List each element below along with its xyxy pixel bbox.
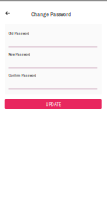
- staticText: Old Password: [8, 31, 29, 36]
- staticText: Confirm Password: [8, 73, 36, 78]
- staticText: New Password: [8, 52, 30, 57]
- button[interactable]: Back: [2, 5, 18, 21]
- staticText: UPDATE: [46, 101, 61, 108]
- button[interactable]: UPDATE: [5, 99, 102, 109]
- staticText: Change Password: [31, 10, 71, 18]
